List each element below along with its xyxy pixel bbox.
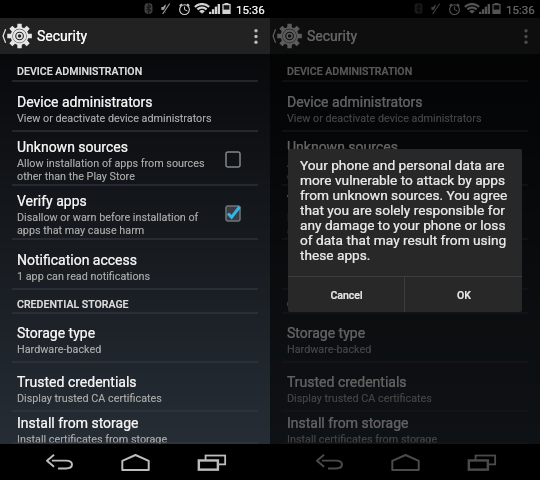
staticText: 15:36 <box>236 3 265 16</box>
staticText: Storage type <box>287 325 366 341</box>
staticText: Install from storage <box>17 415 139 431</box>
staticText: Allow installation of apps from sources … <box>287 157 475 183</box>
staticText: DEVICE ADMINISTRATION <box>17 65 143 77</box>
staticText: Disallow or warn before installation of … <box>17 211 199 237</box>
staticText: Cancel <box>330 289 363 301</box>
staticText: Your phone and personal data are more vu… <box>300 157 508 263</box>
button[interactable]: Security <box>0 23 92 49</box>
staticText: Security <box>307 28 358 44</box>
staticText: Install certificates from storage <box>17 433 168 446</box>
staticText: Hardware-backed <box>17 343 102 356</box>
staticText: DEVICE ADMINISTRATION <box>287 65 413 77</box>
staticText: Display trusted CA certificates <box>17 392 162 405</box>
button[interactable]: Recent apps <box>444 444 519 480</box>
button[interactable]: Device administrators <box>0 82 270 132</box>
button[interactable]: Trusted credentials <box>0 363 270 412</box>
staticText: Unknown sources <box>17 139 128 155</box>
button[interactable]: Notification access <box>270 240 540 290</box>
staticText: Trusted credentials <box>287 374 407 390</box>
staticText: Verify apps <box>287 193 357 209</box>
staticText: Allow installation of apps from sources … <box>17 157 205 183</box>
staticText: Disallow or warn before installation of … <box>287 211 469 237</box>
staticText: OK <box>457 289 471 301</box>
button[interactable]: Verify apps <box>270 186 540 240</box>
button[interactable]: Install from storage <box>270 412 540 444</box>
staticText: Display trusted CA certificates <box>287 392 432 405</box>
button[interactable]: Install from storage <box>0 412 270 444</box>
staticText: View or deactivate device administrators <box>287 112 482 125</box>
staticText: Install certificates from storage <box>287 433 438 446</box>
button[interactable]: Verify apps <box>0 186 270 240</box>
staticText: Device administrators <box>287 94 423 110</box>
staticText: 15:36 <box>506 3 535 16</box>
staticText: Unknown sources <box>287 139 398 155</box>
staticText: 1 app can read notifications <box>287 270 421 283</box>
button[interactable]: Unknown sources <box>270 132 540 186</box>
staticText: Device administrators <box>17 94 153 110</box>
button[interactable]: Device administrators <box>270 82 540 132</box>
button[interactable]: Back <box>294 444 367 480</box>
button[interactable]: Storage type <box>0 314 270 363</box>
button[interactable]: Trusted credentials <box>270 363 540 412</box>
button[interactable]: Storage type <box>270 314 540 363</box>
staticText: Notification access <box>17 252 137 268</box>
staticText: View or deactivate device administrators <box>17 112 212 125</box>
staticText: Hardware-backed <box>287 343 372 356</box>
button[interactable]: Home <box>98 444 173 480</box>
staticText: CREDENTIAL STORAGE <box>287 298 399 310</box>
button[interactable]: OK <box>405 277 522 312</box>
staticText: Trusted credentials <box>17 374 137 390</box>
staticText: Security <box>37 28 88 44</box>
staticText: Storage type <box>17 325 96 341</box>
staticText: CREDENTIAL STORAGE <box>17 298 129 310</box>
staticText: Verify apps <box>17 193 87 209</box>
button[interactable]: Back <box>24 444 97 480</box>
button[interactable]: Cancel <box>288 277 404 312</box>
button[interactable]: More options <box>242 18 270 54</box>
button[interactable]: More options <box>512 18 540 54</box>
button[interactable]: Notification access <box>0 240 270 290</box>
staticText: Install from storage <box>287 415 409 431</box>
button[interactable]: Home <box>368 444 443 480</box>
button[interactable]: Unknown sources <box>0 132 270 186</box>
staticText: 1 app can read notifications <box>17 270 151 283</box>
staticText: Notification access <box>287 252 407 268</box>
button[interactable]: Recent apps <box>174 444 249 480</box>
button[interactable]: Security <box>270 23 362 49</box>
